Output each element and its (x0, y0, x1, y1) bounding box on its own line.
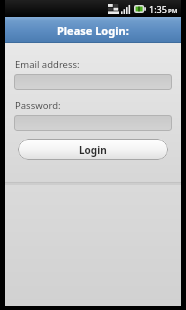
staticText: Please Login: (57, 23, 129, 38)
button[interactable]: Login (18, 139, 168, 160)
staticText: Email address: (15, 58, 80, 71)
button[interactable]: Email address (14, 74, 172, 90)
button[interactable]: Password (14, 115, 172, 131)
staticText: Login (79, 143, 107, 157)
staticText: Password: (15, 99, 61, 112)
staticText: 1:35 (149, 3, 167, 15)
staticText: PM (168, 7, 178, 15)
